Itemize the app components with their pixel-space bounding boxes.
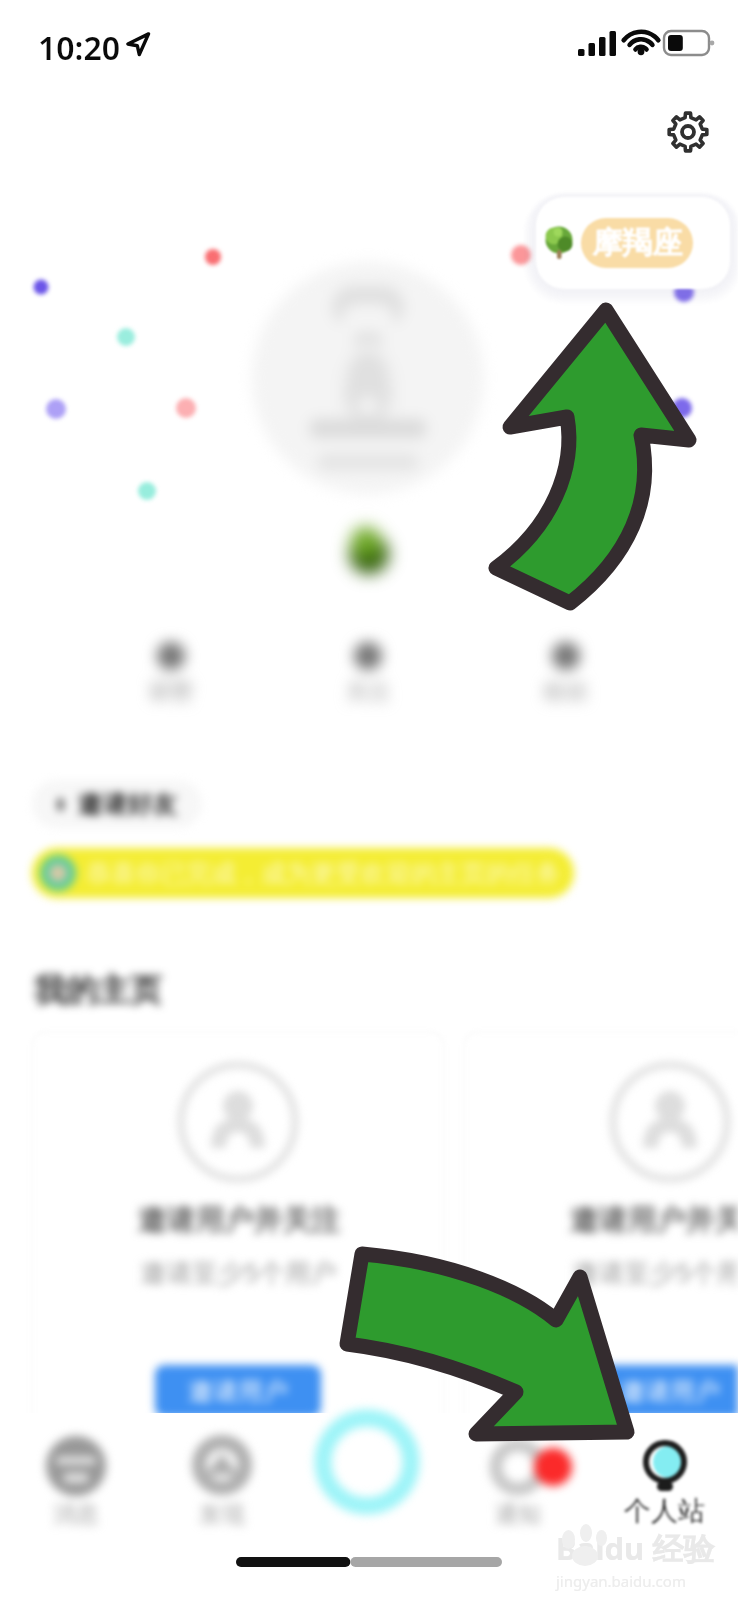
button[interactable]: 邀请用户: [587, 1365, 738, 1417]
staticText: 我的主页: [34, 970, 162, 1010]
staticText: 摩羯座: [592, 224, 682, 262]
button[interactable]: 通知: [458, 1430, 578, 1538]
staticText: 邀请用户: [620, 1376, 720, 1407]
button[interactable]: 个人站: [604, 1432, 724, 1536]
staticText: 恭喜你已完成，成为更受欢迎的主页的任务: [86, 858, 561, 889]
staticText: 发现: [199, 1500, 245, 1529]
button[interactable]: 邀请好友: [32, 780, 202, 828]
staticText: 邀请好友: [77, 789, 177, 820]
staticText: jingyan.baidu.com: [556, 1571, 686, 1591]
button[interactable]: 邀请用户并关注: [32, 1032, 444, 1452]
staticText: 通知: [495, 1500, 541, 1529]
button[interactable]: 邀请用户: [155, 1365, 321, 1417]
button[interactable]: 消息: [16, 1430, 136, 1538]
staticText: 个人站: [624, 1494, 705, 1528]
staticText: 关注: [346, 678, 390, 706]
staticText: 消息: [53, 1500, 99, 1529]
staticText: 获赞: [149, 678, 193, 706]
button[interactable]: 我的主页: [34, 970, 162, 1010]
button[interactable]: 获赞: [101, 628, 241, 728]
button[interactable]: 关注: [298, 628, 438, 728]
button[interactable]: 发现: [162, 1430, 282, 1538]
button[interactable]: Settings: [658, 102, 718, 162]
button[interactable]: [252, 262, 484, 494]
staticText: 邀请用户并关注: [137, 1202, 340, 1239]
staticText: 邀请用户并关注: [569, 1202, 738, 1239]
button[interactable]: 粉丝: [496, 628, 636, 728]
staticText: 邀请至少5个用户: [140, 1254, 337, 1290]
button[interactable]: 摩羯座: [536, 197, 730, 289]
staticText: 邀请用户: [188, 1376, 288, 1407]
staticText: 10:20: [38, 26, 121, 70]
staticText: 粉丝: [544, 678, 588, 706]
staticText: Baidu 经验: [556, 1527, 715, 1569]
button[interactable]: 恭喜你已完成，成为更受欢迎的主页的任务: [32, 848, 574, 898]
staticText: 邀请至少5个用户: [572, 1254, 738, 1290]
button[interactable]: 邀请用户并关注: [464, 1032, 738, 1452]
